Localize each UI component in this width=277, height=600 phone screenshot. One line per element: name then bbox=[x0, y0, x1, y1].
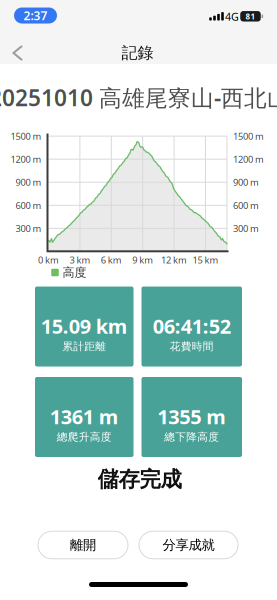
staticText: 20251010 高雄尾寮山-西北山 bbox=[0, 82, 277, 112]
button[interactable]: 離開 bbox=[38, 531, 128, 559]
staticText: 600 m bbox=[233, 199, 259, 211]
staticText: 2:37 bbox=[23, 7, 47, 23]
staticText: 15 km bbox=[192, 254, 218, 266]
staticText: 累計距離 bbox=[62, 340, 106, 353]
staticText: 儲存完成 bbox=[97, 466, 181, 493]
staticText: 離開 bbox=[70, 537, 96, 553]
staticText: 1200 m bbox=[10, 153, 41, 165]
staticText: 06:41:52 bbox=[153, 313, 231, 339]
staticText: 15.09 km bbox=[41, 313, 128, 339]
button[interactable]: Back bbox=[6, 39, 29, 67]
staticText: 81 bbox=[245, 11, 255, 22]
staticText: 1200 m bbox=[233, 153, 264, 165]
staticText: 花費時間 bbox=[170, 340, 214, 353]
staticText: 300 m bbox=[233, 222, 259, 235]
staticText: 1500 m bbox=[10, 130, 41, 142]
staticText: 總下降高度 bbox=[164, 430, 219, 443]
staticText: 3 km bbox=[69, 254, 90, 266]
staticText: 高度 bbox=[62, 265, 86, 280]
staticText: 0 km bbox=[38, 254, 59, 266]
staticText: 900 m bbox=[233, 176, 259, 188]
staticText: 9 km bbox=[132, 254, 153, 266]
staticText: 6 km bbox=[101, 254, 122, 266]
staticText: 900 m bbox=[15, 176, 41, 188]
staticText: 分享成就 bbox=[162, 537, 214, 553]
staticText: 300 m bbox=[15, 222, 41, 235]
staticText: 總爬升高度 bbox=[57, 430, 112, 443]
staticText: 記錄 bbox=[121, 43, 153, 63]
staticText: 1355 m bbox=[157, 403, 226, 430]
staticText: 1500 m bbox=[233, 130, 264, 142]
staticText: 600 m bbox=[15, 199, 41, 211]
staticText: 4G bbox=[225, 9, 239, 24]
button[interactable]: 分享成就 bbox=[139, 531, 238, 559]
staticText: 1361 m bbox=[50, 403, 119, 430]
staticText: 12 km bbox=[161, 254, 187, 266]
